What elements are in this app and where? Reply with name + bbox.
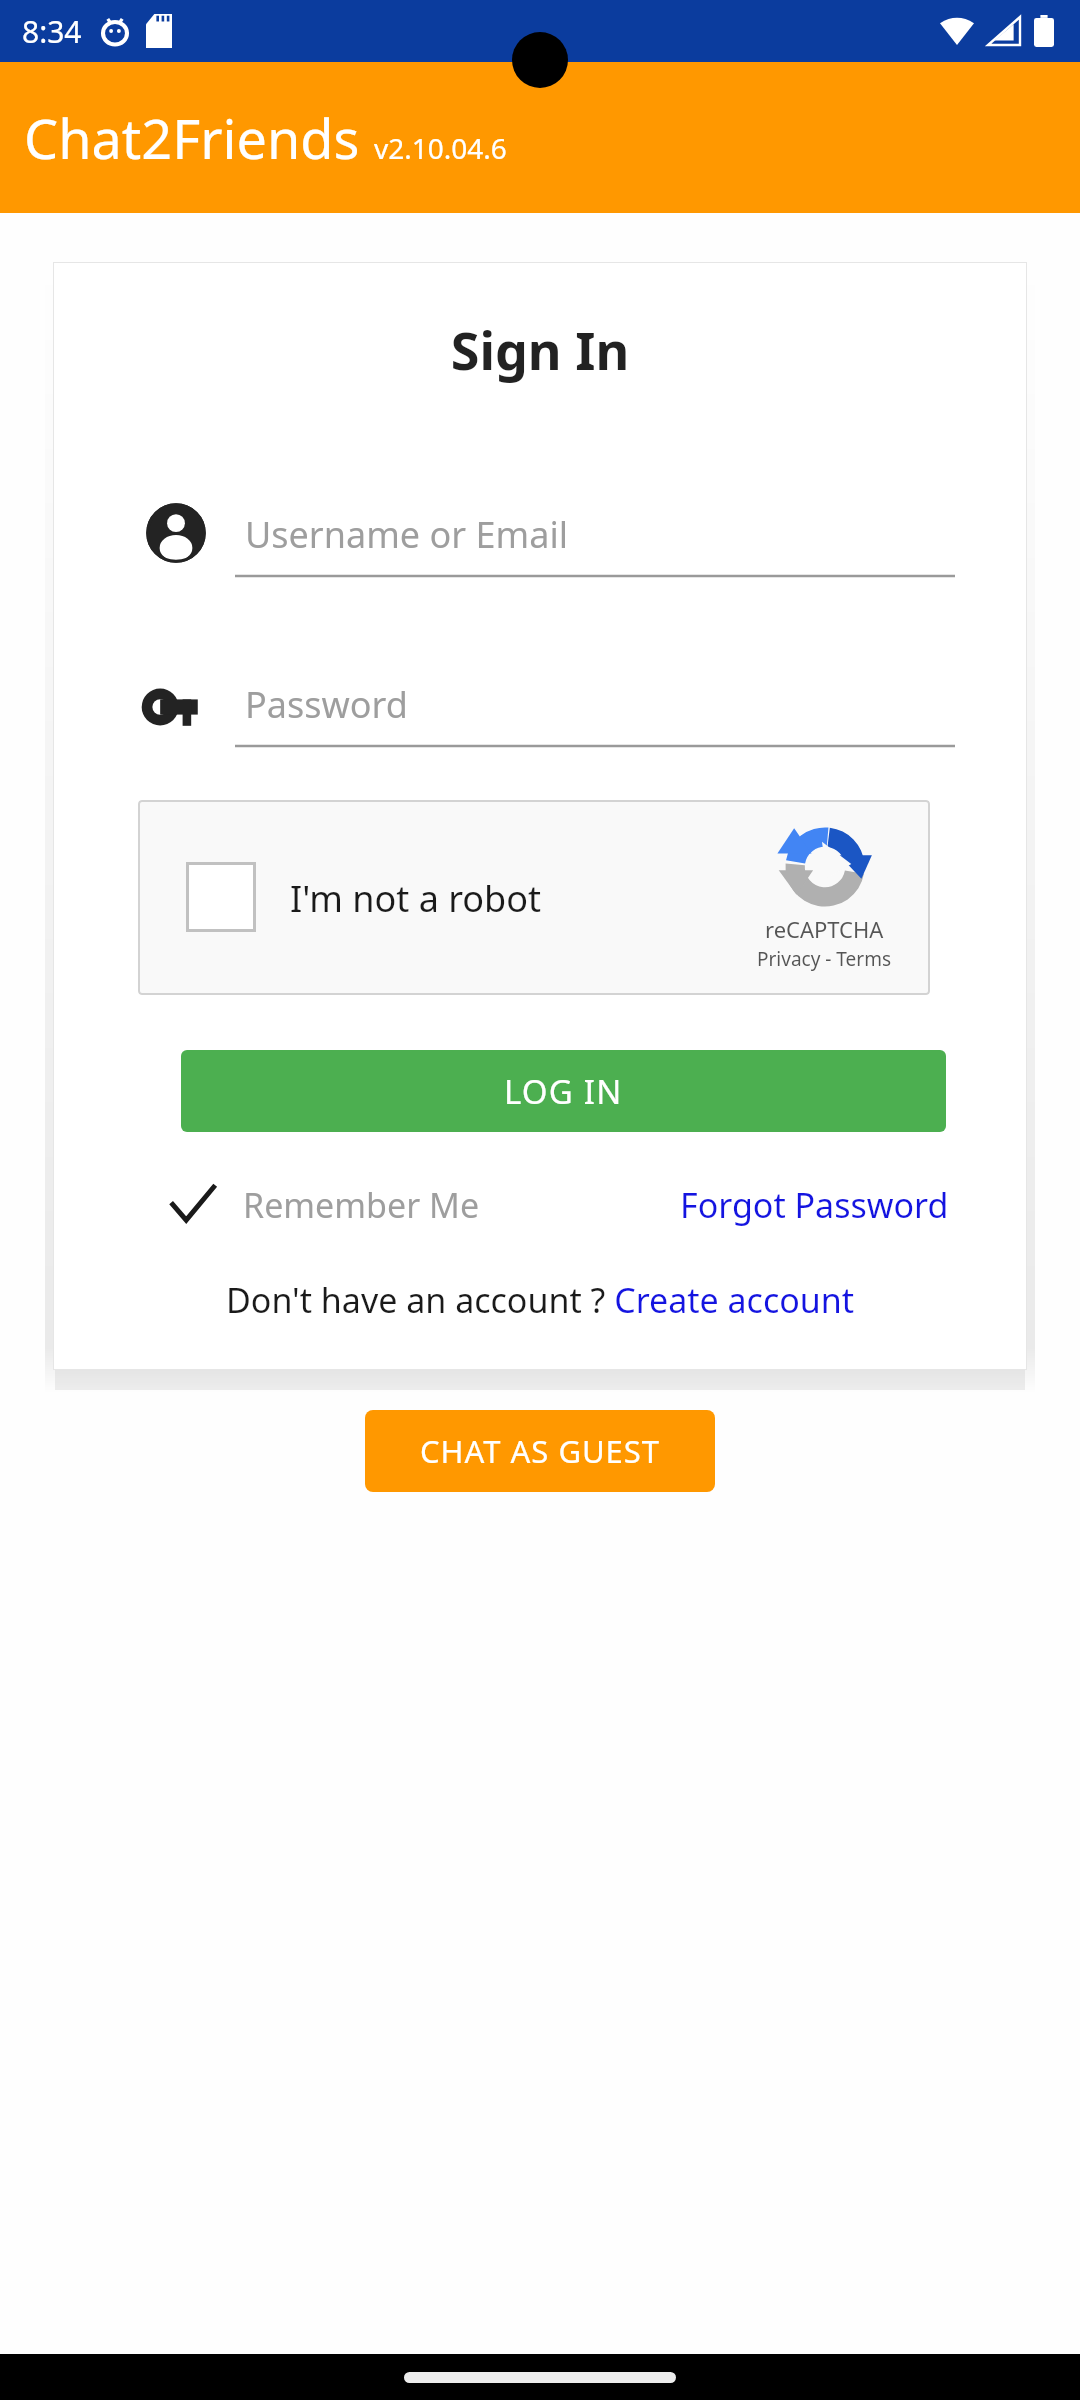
staticText: reCAPTCHA (765, 914, 884, 944)
staticText: Password (245, 680, 408, 729)
staticText: Username or Email (245, 510, 568, 559)
button[interactable]: LOG IN (181, 1050, 946, 1132)
staticText: Chat2Friends (24, 101, 360, 175)
staticText: Sign In (53, 314, 1027, 385)
button[interactable]: Remember Me (163, 1176, 480, 1234)
button[interactable]: Password (125, 648, 955, 758)
other: Password (143, 674, 209, 740)
staticText: Remember Me (243, 1182, 480, 1228)
staticText: Forgot Password (680, 1182, 949, 1228)
staticText: LOG IN (504, 1069, 623, 1114)
button[interactable]: Don't have an account ? Create account (53, 1262, 1027, 1338)
staticText: v2.10.04.6 (374, 129, 507, 167)
staticText: Privacy - Terms (757, 946, 892, 972)
button[interactable]: Forgot Password (680, 1182, 949, 1228)
other: Account (145, 502, 207, 564)
button[interactable]: I'm not a robot (138, 800, 930, 995)
button[interactable]: CHAT AS GUEST (365, 1410, 715, 1492)
staticText: Don't have an account ? Create account (226, 1277, 855, 1323)
staticText: 8:34 (22, 11, 82, 52)
staticText: I'm not a robot (290, 874, 542, 923)
staticText: CHAT AS GUEST (420, 1430, 661, 1472)
button[interactable]: Account (125, 478, 955, 588)
